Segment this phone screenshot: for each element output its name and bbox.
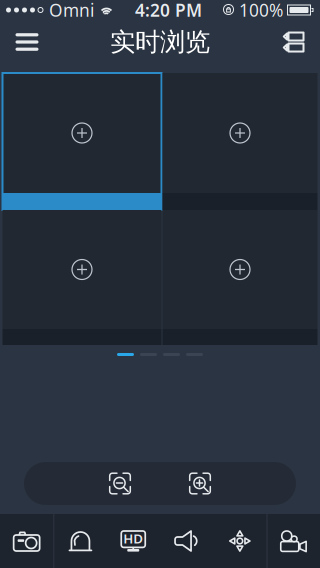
button[interactable]: Record	[267, 514, 320, 568]
button[interactable]: Audio	[160, 514, 213, 568]
staticText: Omni	[49, 0, 94, 21]
staticText: 4:20 PM	[135, 0, 202, 21]
staticText: 100%	[239, 0, 283, 21]
staticText: HD	[123, 529, 143, 547]
button[interactable]: Layout	[266, 20, 320, 64]
button[interactable]: Add camera	[162, 210, 317, 345]
button[interactable]: Zoom in	[160, 462, 240, 505]
button[interactable]: Alarm	[54, 514, 107, 568]
button[interactable]: Snapshot	[0, 514, 53, 568]
button[interactable]: Menu	[0, 20, 54, 64]
button[interactable]: Add camera	[2, 210, 161, 345]
staticText: 实时浏览	[110, 26, 210, 57]
button[interactable]: Quality	[107, 514, 160, 568]
button[interactable]: Add camera	[2, 73, 161, 210]
button[interactable]: Add camera	[162, 73, 317, 210]
button[interactable]: Zoom out	[80, 462, 160, 505]
button[interactable]: PTZ	[213, 514, 266, 568]
